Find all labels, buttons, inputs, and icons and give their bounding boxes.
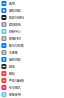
button[interactable]: 屏幕使用 bbox=[0, 91, 64, 98]
staticText: 控制中心 bbox=[9, 29, 21, 34]
staticText: 屏幕使用 bbox=[9, 92, 21, 97]
button[interactable]: 墙纸 bbox=[0, 63, 64, 70]
button[interactable]: 面容与密码 bbox=[0, 14, 64, 21]
staticText: 紧急联络 bbox=[9, 22, 21, 27]
staticText: 专注模式 bbox=[9, 85, 21, 90]
staticText: 通用 bbox=[9, 1, 15, 6]
button[interactable]: 通知 bbox=[0, 70, 64, 77]
staticText: 通知 bbox=[9, 71, 15, 76]
button[interactable]: 辅助功能 bbox=[0, 56, 64, 63]
staticText: 声音与触感 bbox=[9, 78, 24, 83]
staticText: 显示与亮度 bbox=[9, 43, 24, 48]
button[interactable]: 专注模式 bbox=[0, 84, 64, 91]
button[interactable]: 声音与触感 bbox=[0, 77, 64, 84]
staticText: 墙纸 bbox=[9, 64, 15, 69]
button[interactable]: 控制中心 bbox=[0, 28, 64, 35]
staticText: 辅助功能 bbox=[9, 57, 21, 62]
button[interactable]: 主屏幕 bbox=[0, 49, 64, 56]
button[interactable]: 显示与亮度 bbox=[0, 42, 64, 49]
button[interactable]: 紧急联络 bbox=[0, 21, 64, 28]
staticText: 屏幕时间 bbox=[9, 36, 21, 41]
staticText: 面容与密码 bbox=[9, 15, 24, 20]
button[interactable]: 通用 bbox=[0, 0, 64, 7]
button[interactable]: 屏幕时间 bbox=[0, 35, 64, 42]
staticText: 主屏幕 bbox=[9, 50, 18, 55]
staticText: 辅助功能 bbox=[9, 8, 21, 13]
button[interactable]: 辅助功能 bbox=[0, 7, 64, 14]
